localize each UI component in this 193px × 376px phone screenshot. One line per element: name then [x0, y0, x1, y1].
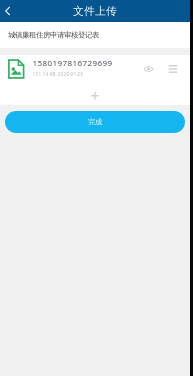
staticText: 城镇廉租住房申请审核登记表 — [8, 30, 99, 40]
button[interactable]: 完成 — [5, 111, 185, 133]
staticText: 完成 — [88, 117, 102, 127]
button[interactable]: Back — [5, 0, 23, 22]
button[interactable]: Preview file — [141, 61, 156, 77]
staticText: 1580197816729699 — [32, 58, 112, 68]
staticText: 文件上传 — [73, 4, 117, 18]
staticText: 151.14 KB 2020-01-26 — [32, 71, 83, 77]
button[interactable]: More options — [166, 61, 180, 77]
